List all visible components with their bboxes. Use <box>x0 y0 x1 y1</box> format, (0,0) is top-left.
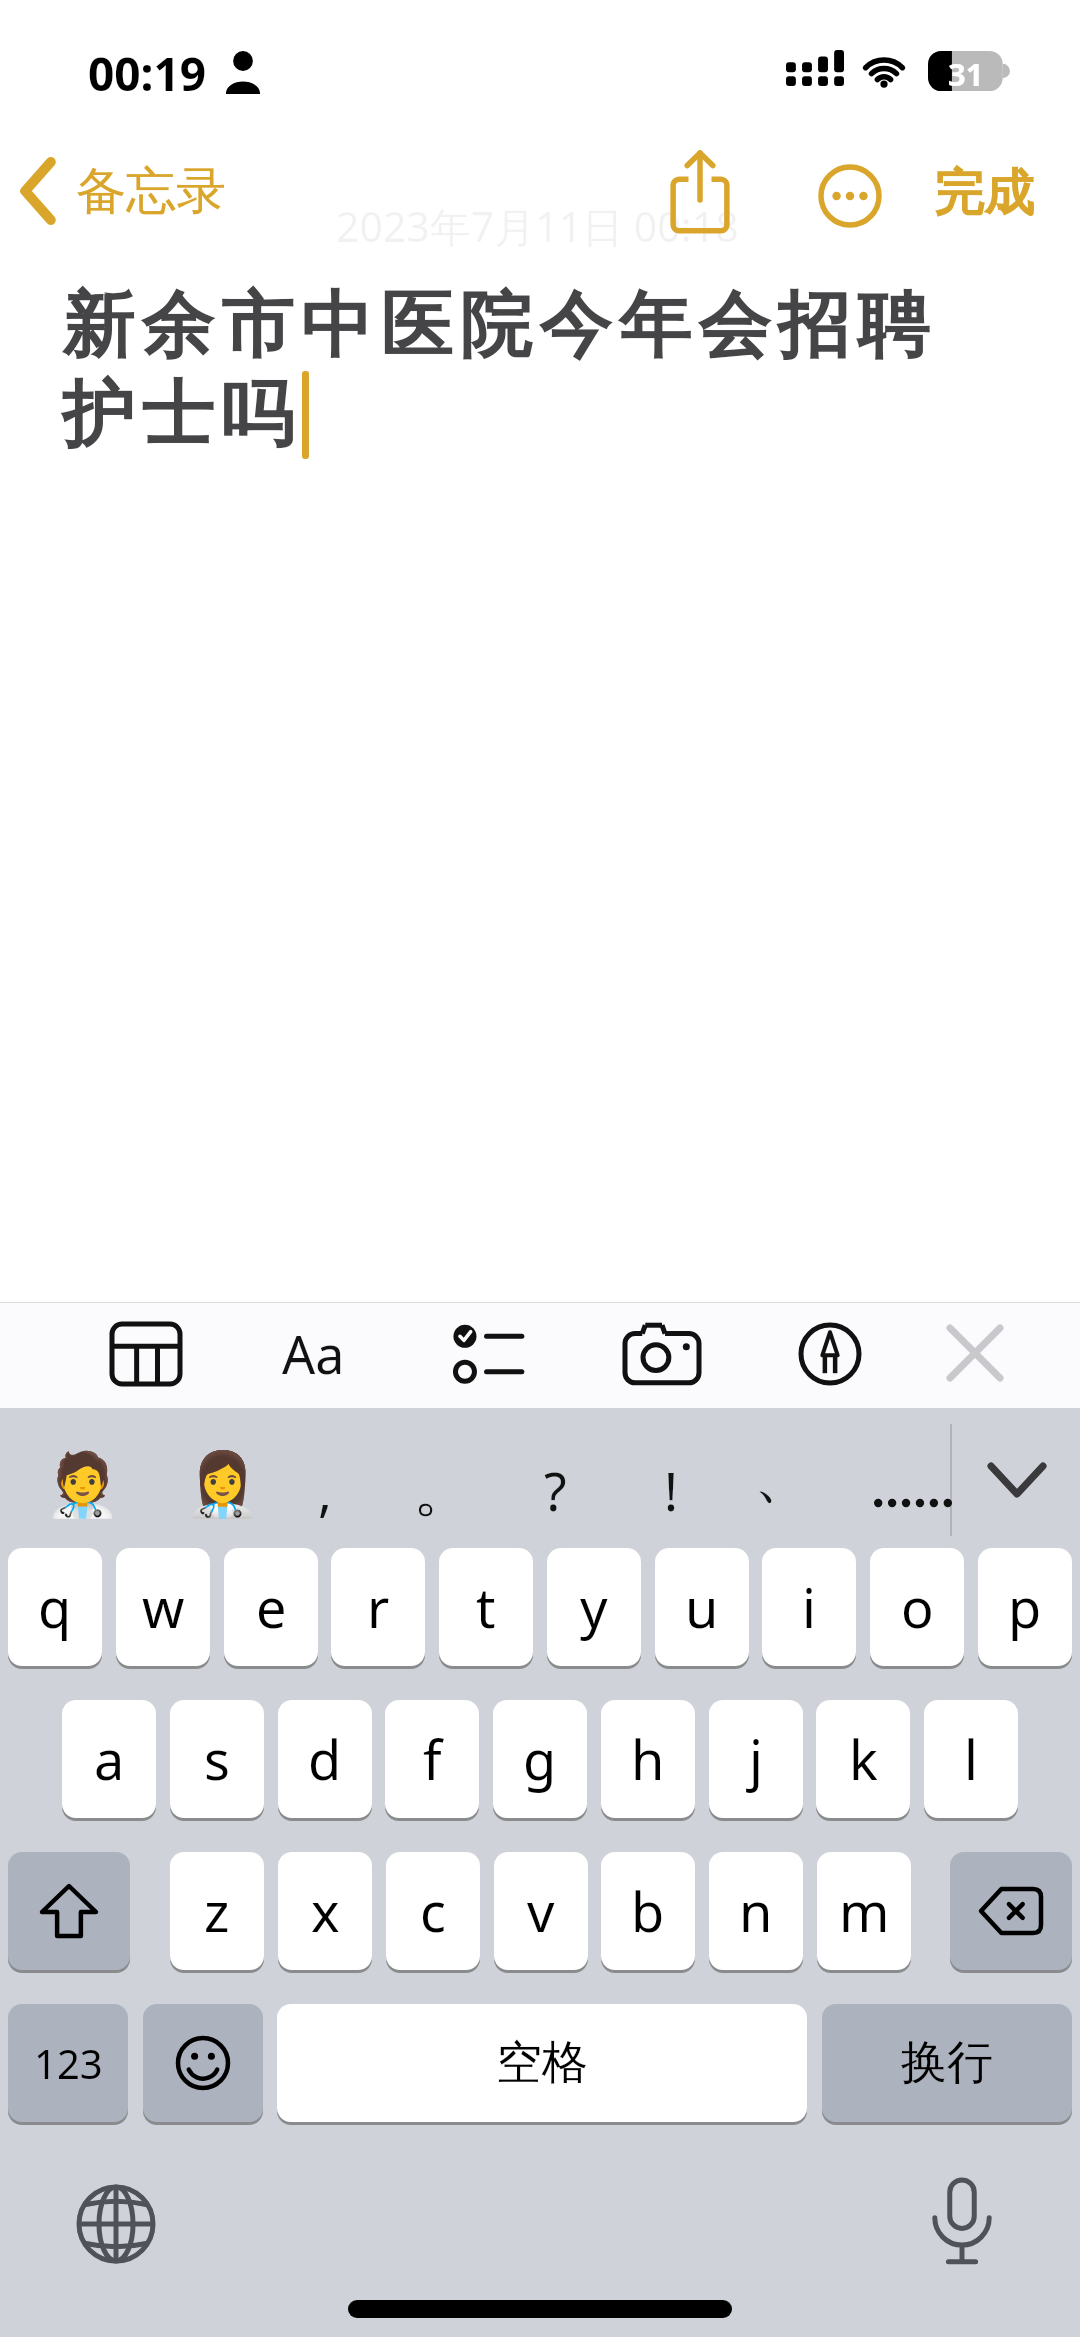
button[interactable] <box>624 1324 700 1384</box>
button[interactable]: r <box>331 1548 425 1669</box>
button[interactable] <box>798 1322 862 1386</box>
button[interactable]: m <box>817 1852 911 1973</box>
staticText: u <box>685 1570 719 1644</box>
button[interactable]: i <box>762 1548 856 1669</box>
staticText: 31 <box>948 53 984 93</box>
button[interactable] <box>928 2180 996 2268</box>
button[interactable]: t <box>439 1548 533 1669</box>
button[interactable]: 👩‍⚕️ <box>184 1448 262 1521</box>
staticText: j <box>749 1722 763 1796</box>
staticText: c <box>420 1874 446 1948</box>
staticText: 。 <box>413 1452 473 1528</box>
staticText: 换行 <box>901 2034 993 2092</box>
staticText: h <box>631 1722 665 1796</box>
button[interactable] <box>110 1322 182 1386</box>
staticText: a <box>94 1722 125 1796</box>
button[interactable] <box>950 1852 1072 1973</box>
button[interactable]: c <box>386 1852 480 1973</box>
button[interactable]: q <box>8 1548 102 1669</box>
button[interactable]: f <box>385 1700 479 1821</box>
staticText: g <box>523 1722 557 1796</box>
staticText: z <box>204 1874 230 1948</box>
staticText: 空格 <box>496 2034 588 2092</box>
button[interactable]: a <box>62 1700 156 1821</box>
staticText: x <box>311 1874 340 1948</box>
button[interactable] <box>143 2004 263 2125</box>
button[interactable]: e <box>224 1548 318 1669</box>
button[interactable]: z <box>170 1852 264 1973</box>
button[interactable] <box>76 2184 156 2264</box>
staticText: p <box>1008 1570 1042 1644</box>
button[interactable]: p <box>978 1548 1072 1669</box>
staticText: o <box>901 1570 934 1644</box>
button[interactable]: 🧑‍⚕️ <box>44 1448 122 1521</box>
staticText: t <box>476 1570 496 1644</box>
button[interactable]: x <box>278 1852 372 1973</box>
staticText: k <box>849 1722 878 1796</box>
button[interactable]: v <box>494 1852 588 1973</box>
staticText: q <box>38 1570 72 1644</box>
button[interactable] <box>8 1852 130 1973</box>
button[interactable] <box>874 1496 952 1510</box>
staticText: d <box>308 1722 342 1796</box>
button[interactable] <box>946 1324 1004 1382</box>
button[interactable]: ! <box>641 1448 701 1532</box>
button[interactable]: 123 <box>8 2004 128 2125</box>
button[interactable] <box>452 1320 524 1388</box>
staticText: ? <box>544 1455 567 1526</box>
staticText: r <box>367 1570 390 1644</box>
button[interactable]: d <box>278 1700 372 1821</box>
staticText: 2023年7月11日 00:18 <box>336 198 739 254</box>
button[interactable]: 完成 <box>934 162 1034 225</box>
button[interactable]: j <box>709 1700 803 1821</box>
staticText: s <box>204 1722 230 1796</box>
staticText: l <box>964 1722 978 1796</box>
staticText: n <box>739 1874 773 1948</box>
button[interactable]: 换行 <box>822 2004 1072 2125</box>
button[interactable]: g <box>493 1700 587 1821</box>
button[interactable]: w <box>116 1548 210 1669</box>
staticText: b <box>631 1874 665 1948</box>
staticText: 备忘录 <box>76 160 226 223</box>
button[interactable] <box>818 164 882 228</box>
staticText: v <box>527 1874 555 1948</box>
button[interactable]: b <box>601 1852 695 1973</box>
button[interactable] <box>668 150 732 236</box>
button[interactable]: Aa <box>282 1318 345 1389</box>
staticText: 、 <box>754 1440 812 1513</box>
button[interactable]: s <box>170 1700 264 1821</box>
staticText: , <box>318 1455 332 1526</box>
button[interactable]: y <box>547 1548 641 1669</box>
button[interactable] <box>986 1460 1048 1500</box>
button[interactable]: k <box>816 1700 910 1821</box>
staticText: 00:19 <box>88 42 207 105</box>
staticText: 新余市中医院今年会招聘 护士吗 <box>62 281 937 460</box>
staticText: 123 <box>34 2036 103 2090</box>
button[interactable]: l <box>924 1700 1018 1821</box>
staticText: y <box>580 1570 608 1644</box>
staticText: ! <box>664 1455 678 1526</box>
staticText: i <box>802 1570 816 1644</box>
button[interactable]: 、 <box>753 1434 813 1518</box>
button[interactable]: u <box>655 1548 749 1669</box>
button[interactable]: h <box>601 1700 695 1821</box>
button[interactable]: 备忘录 <box>18 158 226 224</box>
button[interactable]: o <box>870 1548 964 1669</box>
staticText: e <box>256 1570 287 1644</box>
button[interactable]: n <box>709 1852 803 1973</box>
button[interactable]: 空格 <box>277 2004 807 2125</box>
staticText: m <box>839 1874 890 1948</box>
button[interactable]: 。 <box>413 1448 473 1532</box>
staticText: w <box>142 1570 185 1644</box>
button[interactable]: ? <box>525 1448 585 1532</box>
button[interactable]: , <box>295 1448 355 1532</box>
staticText: f <box>423 1722 442 1796</box>
